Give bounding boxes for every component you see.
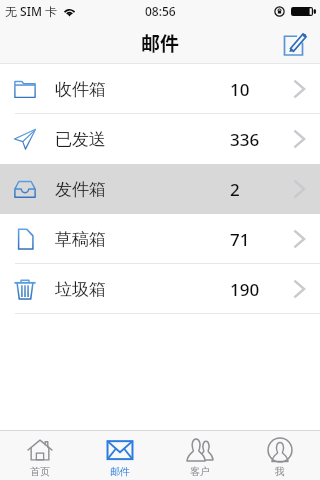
staticText: 190 xyxy=(230,278,260,301)
button[interactable]: 发件箱 xyxy=(0,164,320,214)
staticText: 我 xyxy=(275,465,285,478)
staticText: 无 SIM 卡 xyxy=(5,3,58,19)
staticText: 收件箱 xyxy=(55,79,106,100)
staticText: 10 xyxy=(230,78,250,101)
staticText: 2 xyxy=(230,178,240,201)
button[interactable]: 邮件 xyxy=(80,431,160,480)
staticText: 08:56 xyxy=(145,3,176,19)
staticText: 发件箱 xyxy=(55,179,106,200)
staticText: 邮件 xyxy=(141,29,180,57)
button[interactable]: 我 xyxy=(240,431,320,480)
staticText: 已发送 xyxy=(55,129,106,150)
button[interactable]: 客户 xyxy=(160,431,240,480)
staticText: 草稿箱 xyxy=(55,229,106,250)
button[interactable]: 首页 xyxy=(0,431,80,480)
staticText: 71 xyxy=(230,228,250,251)
staticText: 垃圾箱 xyxy=(55,279,106,300)
staticText: 邮件 xyxy=(110,465,130,478)
button[interactable]: 已发送 xyxy=(0,114,320,164)
staticText: 客户 xyxy=(190,465,210,478)
button[interactable]: 草稿箱 xyxy=(0,214,320,264)
staticText: 首页 xyxy=(30,465,50,478)
button[interactable]: Compose new mail xyxy=(283,30,308,55)
staticText: 336 xyxy=(230,128,260,151)
button[interactable]: 垃圾箱 xyxy=(0,264,320,314)
button[interactable]: 收件箱 xyxy=(0,64,320,114)
